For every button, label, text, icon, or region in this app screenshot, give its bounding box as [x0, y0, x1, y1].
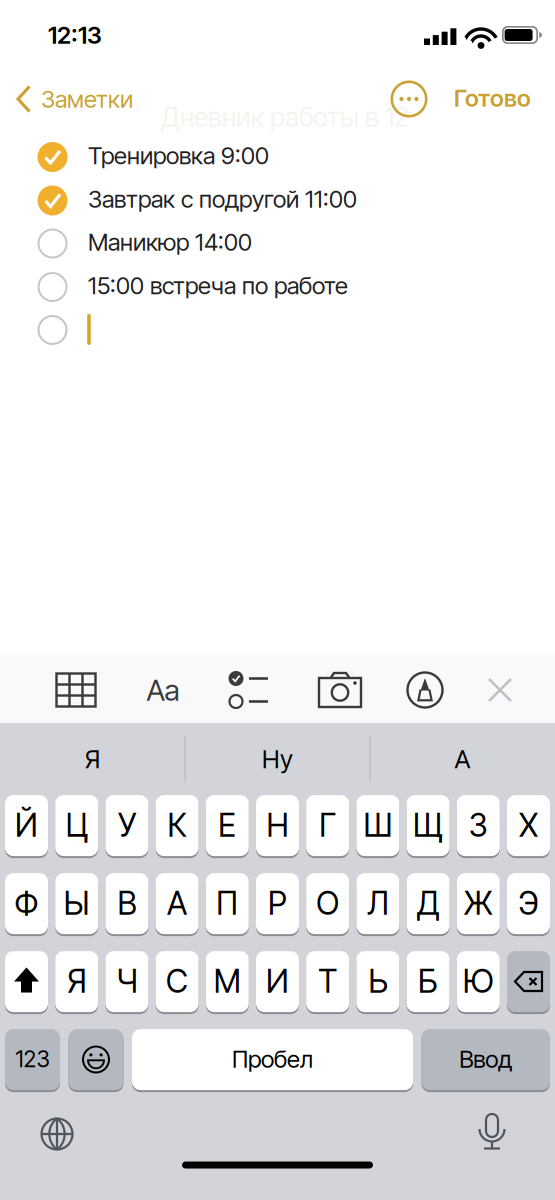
staticText: Х	[519, 806, 538, 844]
staticText: Г	[319, 806, 336, 844]
button[interactable]: Л	[356, 873, 399, 934]
button[interactable]: 123	[5, 1029, 60, 1090]
staticText: Ну	[262, 744, 293, 774]
button[interactable]: Отметить пункт	[37, 142, 67, 172]
button[interactable]: З	[457, 795, 500, 856]
staticText: Я	[84, 744, 100, 774]
staticText: Пробел	[232, 1045, 313, 1073]
staticText: Завтрак с подругой 11:00	[88, 185, 357, 213]
staticText: Ч	[116, 962, 137, 1000]
button[interactable]: Ну	[187, 726, 367, 792]
button[interactable]: А	[372, 726, 552, 792]
staticText: Дневник работы в 12	[161, 101, 409, 133]
button[interactable]: В	[105, 873, 148, 934]
staticText: 15:00 встреча по работе	[88, 271, 348, 300]
button[interactable]: Т	[306, 951, 349, 1012]
staticText: С	[166, 962, 188, 1000]
staticText: Р	[268, 884, 287, 922]
button[interactable]: Отметить пункт	[37, 315, 67, 345]
button[interactable]: С	[156, 951, 199, 1012]
staticText: Ш	[363, 806, 392, 844]
staticText: З	[469, 806, 488, 844]
staticText: Ц	[66, 806, 88, 844]
staticText: Тренировка 9:00	[88, 141, 269, 170]
button[interactable]: Ч	[105, 951, 148, 1012]
staticText: Аа	[146, 673, 179, 707]
staticText: А	[167, 884, 187, 922]
button[interactable]: Я	[2, 726, 182, 792]
button[interactable]: Ф	[5, 873, 48, 934]
button[interactable]: Разметка	[406, 671, 444, 709]
staticText: Готово	[454, 84, 531, 112]
staticText: И	[266, 962, 289, 1000]
button[interactable]: Ц	[55, 795, 98, 856]
button[interactable]: Н	[256, 795, 299, 856]
staticText: Ф	[14, 884, 38, 922]
button[interactable]: Диктовка	[476, 1113, 508, 1150]
button[interactable]: Ю	[457, 951, 500, 1012]
button[interactable]: Э	[507, 873, 550, 934]
button[interactable]: М	[206, 951, 249, 1012]
button[interactable]: У	[105, 795, 148, 856]
staticText: Т	[318, 962, 337, 1000]
button[interactable]: Ещё	[389, 79, 429, 119]
button[interactable]: К	[156, 795, 199, 856]
staticText: О	[316, 884, 339, 922]
button[interactable]: Камера	[317, 670, 362, 709]
button[interactable]: А	[156, 873, 199, 934]
button[interactable]: Р	[256, 873, 299, 934]
staticText: Ы	[64, 884, 90, 922]
staticText: Ю	[463, 962, 494, 1000]
button[interactable]: Е	[206, 795, 249, 856]
staticText: 12:13	[48, 21, 102, 49]
button[interactable]: Отметить пункт	[37, 185, 67, 215]
staticText: А	[454, 744, 470, 774]
button[interactable]: Й	[5, 795, 48, 856]
button[interactable]: И	[256, 951, 299, 1012]
button[interactable]: Х	[507, 795, 550, 856]
button[interactable]: Отметить пункт	[37, 272, 67, 302]
staticText: В	[117, 884, 136, 922]
staticText: Л	[367, 884, 388, 922]
button[interactable]: Ь	[356, 951, 399, 1012]
staticText: Я	[67, 962, 87, 1000]
button[interactable]: Б	[407, 951, 450, 1012]
staticText: 123	[15, 1046, 49, 1072]
staticText: Ь	[368, 962, 387, 1000]
button[interactable]: Отметить пункт	[37, 228, 67, 258]
staticText: Е	[218, 806, 236, 844]
staticText: М	[214, 962, 241, 1000]
button[interactable]: Г	[306, 795, 349, 856]
staticText: К	[168, 806, 187, 844]
staticText: Б	[418, 962, 438, 1000]
button[interactable]: Формат	[146, 673, 179, 707]
button[interactable]: Shift	[5, 951, 48, 1012]
button[interactable]: Закрыть	[487, 677, 513, 703]
staticText: Ввод	[459, 1045, 512, 1073]
button[interactable]: Я	[55, 951, 98, 1012]
staticText: Заметки	[41, 85, 133, 113]
button[interactable]: Ы	[55, 873, 98, 934]
staticText: Н	[266, 806, 288, 844]
button[interactable]: Эмодзи	[68, 1029, 123, 1090]
button[interactable]: О	[306, 873, 349, 934]
staticText: Й	[15, 806, 38, 844]
button[interactable]: Заметки	[16, 85, 133, 113]
staticText: Маникюр 14:00	[88, 228, 252, 256]
staticText: Э	[518, 884, 538, 922]
button[interactable]: Ж	[457, 873, 500, 934]
button[interactable]: Удалить	[507, 951, 550, 1012]
button[interactable]: Щ	[407, 795, 450, 856]
button[interactable]: Список	[228, 669, 270, 710]
button[interactable]: П	[206, 873, 249, 934]
button[interactable]: Сменить клавиатуру	[40, 1117, 74, 1151]
staticText: Д	[417, 884, 439, 922]
button[interactable]: Ш	[356, 795, 399, 856]
button[interactable]: Готово	[454, 84, 531, 112]
button[interactable]: Пробел	[132, 1029, 413, 1090]
button[interactable]: Д	[407, 873, 450, 934]
button[interactable]: Таблица	[55, 669, 97, 710]
button[interactable]: Ввод	[421, 1029, 550, 1090]
staticText: Щ	[413, 806, 443, 844]
staticText: П	[216, 884, 238, 922]
